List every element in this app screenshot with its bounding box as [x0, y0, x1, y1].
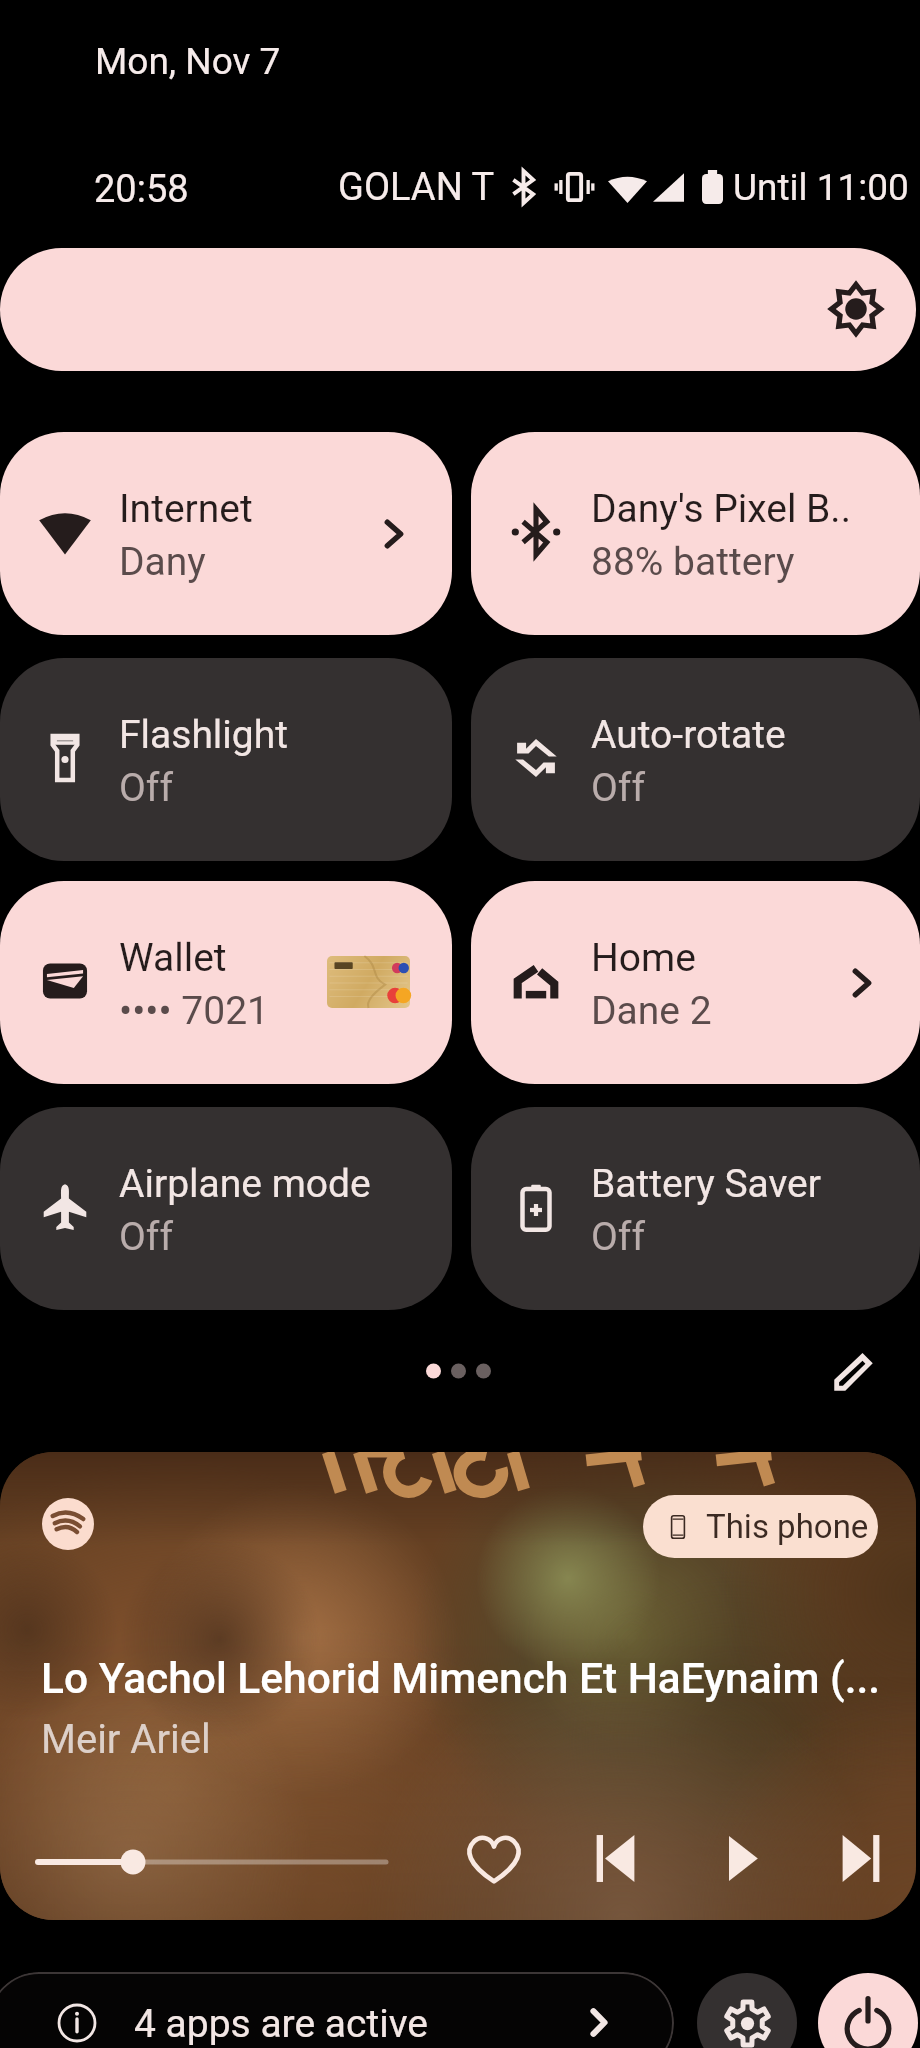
button[interactable]: Favourite [463, 1833, 525, 1885]
staticText: Dany's Pixel B.. [591, 486, 851, 532]
button[interactable]: Brightness [0, 248, 916, 371]
button[interactable]: Settings [697, 1973, 797, 2048]
staticText: Off [591, 765, 645, 811]
button[interactable]: Edit tiles [833, 1351, 874, 1392]
other: Brightness [831, 284, 881, 334]
staticText: Meir Ariel [41, 1716, 211, 1763]
button[interactable]: Battery Saver [471, 1107, 920, 1310]
staticText: 4 apps are active [134, 2001, 429, 2047]
button[interactable]: Previous [595, 1833, 636, 1884]
staticText: This phone [706, 1507, 869, 1546]
button[interactable]: Wallet [0, 881, 452, 1084]
staticText: Battery Saver [591, 1161, 822, 1207]
button[interactable]: Auto-rotate [471, 658, 920, 861]
staticText: Off [119, 765, 173, 811]
staticText: Dany [119, 539, 206, 585]
staticText: Dane 2 [591, 988, 712, 1034]
staticText: Auto-rotate [591, 712, 786, 758]
staticText: Home [591, 935, 696, 981]
staticText: Internet [119, 486, 253, 532]
button[interactable]: Airplane mode [0, 1107, 452, 1310]
button[interactable]: Spotify [0, 1452, 916, 1920]
staticText: 20:58 [94, 167, 189, 212]
staticText: Wallet [119, 935, 227, 981]
button[interactable]: Play [721, 1833, 761, 1884]
staticText: •••• 7021 [119, 988, 269, 1034]
button[interactable]: Home [471, 881, 920, 1084]
staticText: Flashlight [119, 712, 288, 758]
staticText: 88% battery [591, 539, 795, 585]
button[interactable]: Flashlight [0, 658, 452, 861]
staticText: Until 11:00 [733, 166, 909, 209]
button[interactable]: 4 apps are active [0, 1972, 674, 2048]
button[interactable]: Next [841, 1833, 881, 1884]
button[interactable]: Spotify [42, 1498, 94, 1550]
button[interactable]: Dany's Pixel B.. [471, 432, 920, 635]
staticText: Off [591, 1214, 645, 1260]
staticText: GOLAN T [338, 165, 495, 210]
staticText: Lo Yachol Lehorid Mimench Et HaEynaim (.… [41, 1654, 881, 1704]
button[interactable]: This phone [643, 1495, 878, 1558]
staticText: Mon, Nov 7 [95, 40, 281, 83]
button[interactable]: Power [818, 1973, 918, 2048]
staticText: Airplane mode [119, 1161, 371, 1207]
staticText: Off [119, 1214, 173, 1260]
button[interactable]: Internet [0, 432, 452, 635]
